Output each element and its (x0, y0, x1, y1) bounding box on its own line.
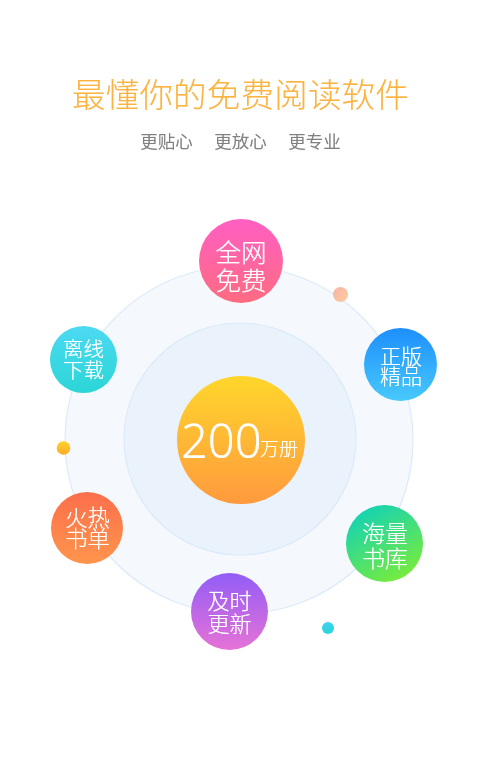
staticText: 及时 更新 (207, 583, 252, 639)
staticText: 万册 (260, 434, 299, 462)
staticText: 全网 免费 (215, 232, 267, 297)
staticText: 更放心 (214, 128, 267, 153)
staticText: 更专业 (288, 128, 341, 153)
staticText: 更贴心 (140, 128, 193, 153)
button[interactable]: 海量书库 (346, 505, 423, 582)
button[interactable]: 离线下载 (50, 326, 117, 393)
staticText: 200 (181, 408, 262, 472)
button[interactable]: 正版精品 (364, 328, 437, 401)
staticText: 离线 下载 (63, 333, 104, 384)
staticText: 海量 书库 (362, 516, 408, 573)
staticText: 火热 书单 (65, 500, 110, 554)
staticText: 最懂你的免费阅读软件 (72, 68, 409, 117)
button[interactable]: 全网免费 (199, 219, 283, 303)
button[interactable]: 及时更新 (191, 573, 268, 650)
button[interactable]: 200万册 (177, 376, 305, 504)
button[interactable]: 火热书单 (51, 492, 123, 564)
staticText: 正版 精品 (380, 340, 422, 390)
